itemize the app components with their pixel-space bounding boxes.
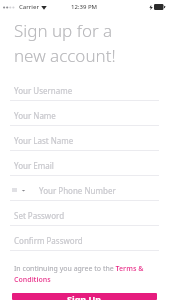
button[interactable]: Select country code — [0, 180, 169, 205]
button[interactable]: Your Email — [0, 155, 169, 180]
staticText: Sign up for a — [14, 19, 113, 42]
staticText: Confirm Password — [14, 235, 83, 246]
staticText: new account! — [14, 44, 116, 67]
other: Select country code — [21, 188, 26, 193]
staticText: Carrier — [19, 3, 39, 11]
staticText: Your Email — [14, 160, 54, 171]
button[interactable]: Your Name — [0, 105, 169, 130]
button[interactable]: Set Password — [0, 205, 169, 230]
button[interactable]: Sign Up — [12, 293, 157, 300]
staticText: Sign Up — [67, 293, 102, 300]
staticText: Your Phone Number — [39, 185, 116, 196]
staticText: Set Password — [14, 210, 65, 221]
button[interactable]: In continuing you agree to the Terms & C… — [14, 264, 155, 284]
staticText: Your Username — [14, 85, 73, 96]
staticText: In continuing you agree to the Terms & C… — [14, 264, 155, 284]
staticText: Your Name — [14, 110, 56, 121]
staticText: Your Last Name — [14, 135, 74, 146]
button[interactable]: Your Last Name — [0, 130, 169, 155]
button[interactable]: Your Username — [0, 80, 169, 105]
button[interactable]: Confirm Password — [0, 230, 169, 255]
staticText: 12:39 PM — [71, 3, 98, 11]
